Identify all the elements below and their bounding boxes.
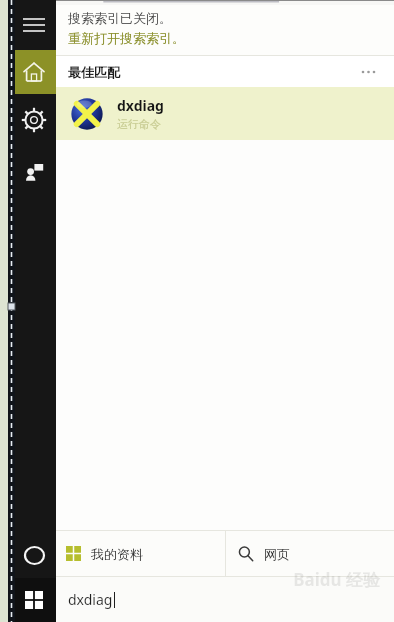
staticText: 搜索索引已关闭。 [68, 10, 172, 26]
button[interactable]: Start [0, 578, 56, 622]
staticText: Baidu 经验 [293, 568, 380, 591]
button[interactable]: Home [0, 50, 56, 94]
button[interactable]: 网页 [226, 531, 394, 576]
staticText: dxdiag [68, 590, 113, 609]
button[interactable]: More options [358, 61, 380, 83]
button[interactable]: Settings [0, 94, 56, 146]
staticText: 运行命令 [117, 117, 161, 131]
staticText: 我的资料 [91, 546, 143, 562]
staticText: 最佳匹配 [68, 64, 120, 80]
staticText: 网页 [264, 546, 290, 562]
staticText: dxdiag [117, 96, 164, 115]
button[interactable]: dxdiag [56, 577, 394, 622]
button[interactable]: Feedback [0, 146, 56, 198]
button[interactable]: Cortana [0, 532, 56, 578]
button[interactable]: Menu [0, 0, 56, 50]
button[interactable]: dxdiag [56, 87, 394, 140]
button[interactable]: 我的资料 [56, 531, 225, 576]
staticText: 重新打开搜索索引。 [68, 30, 185, 46]
button[interactable]: 重新打开搜索索引。 [68, 30, 185, 46]
